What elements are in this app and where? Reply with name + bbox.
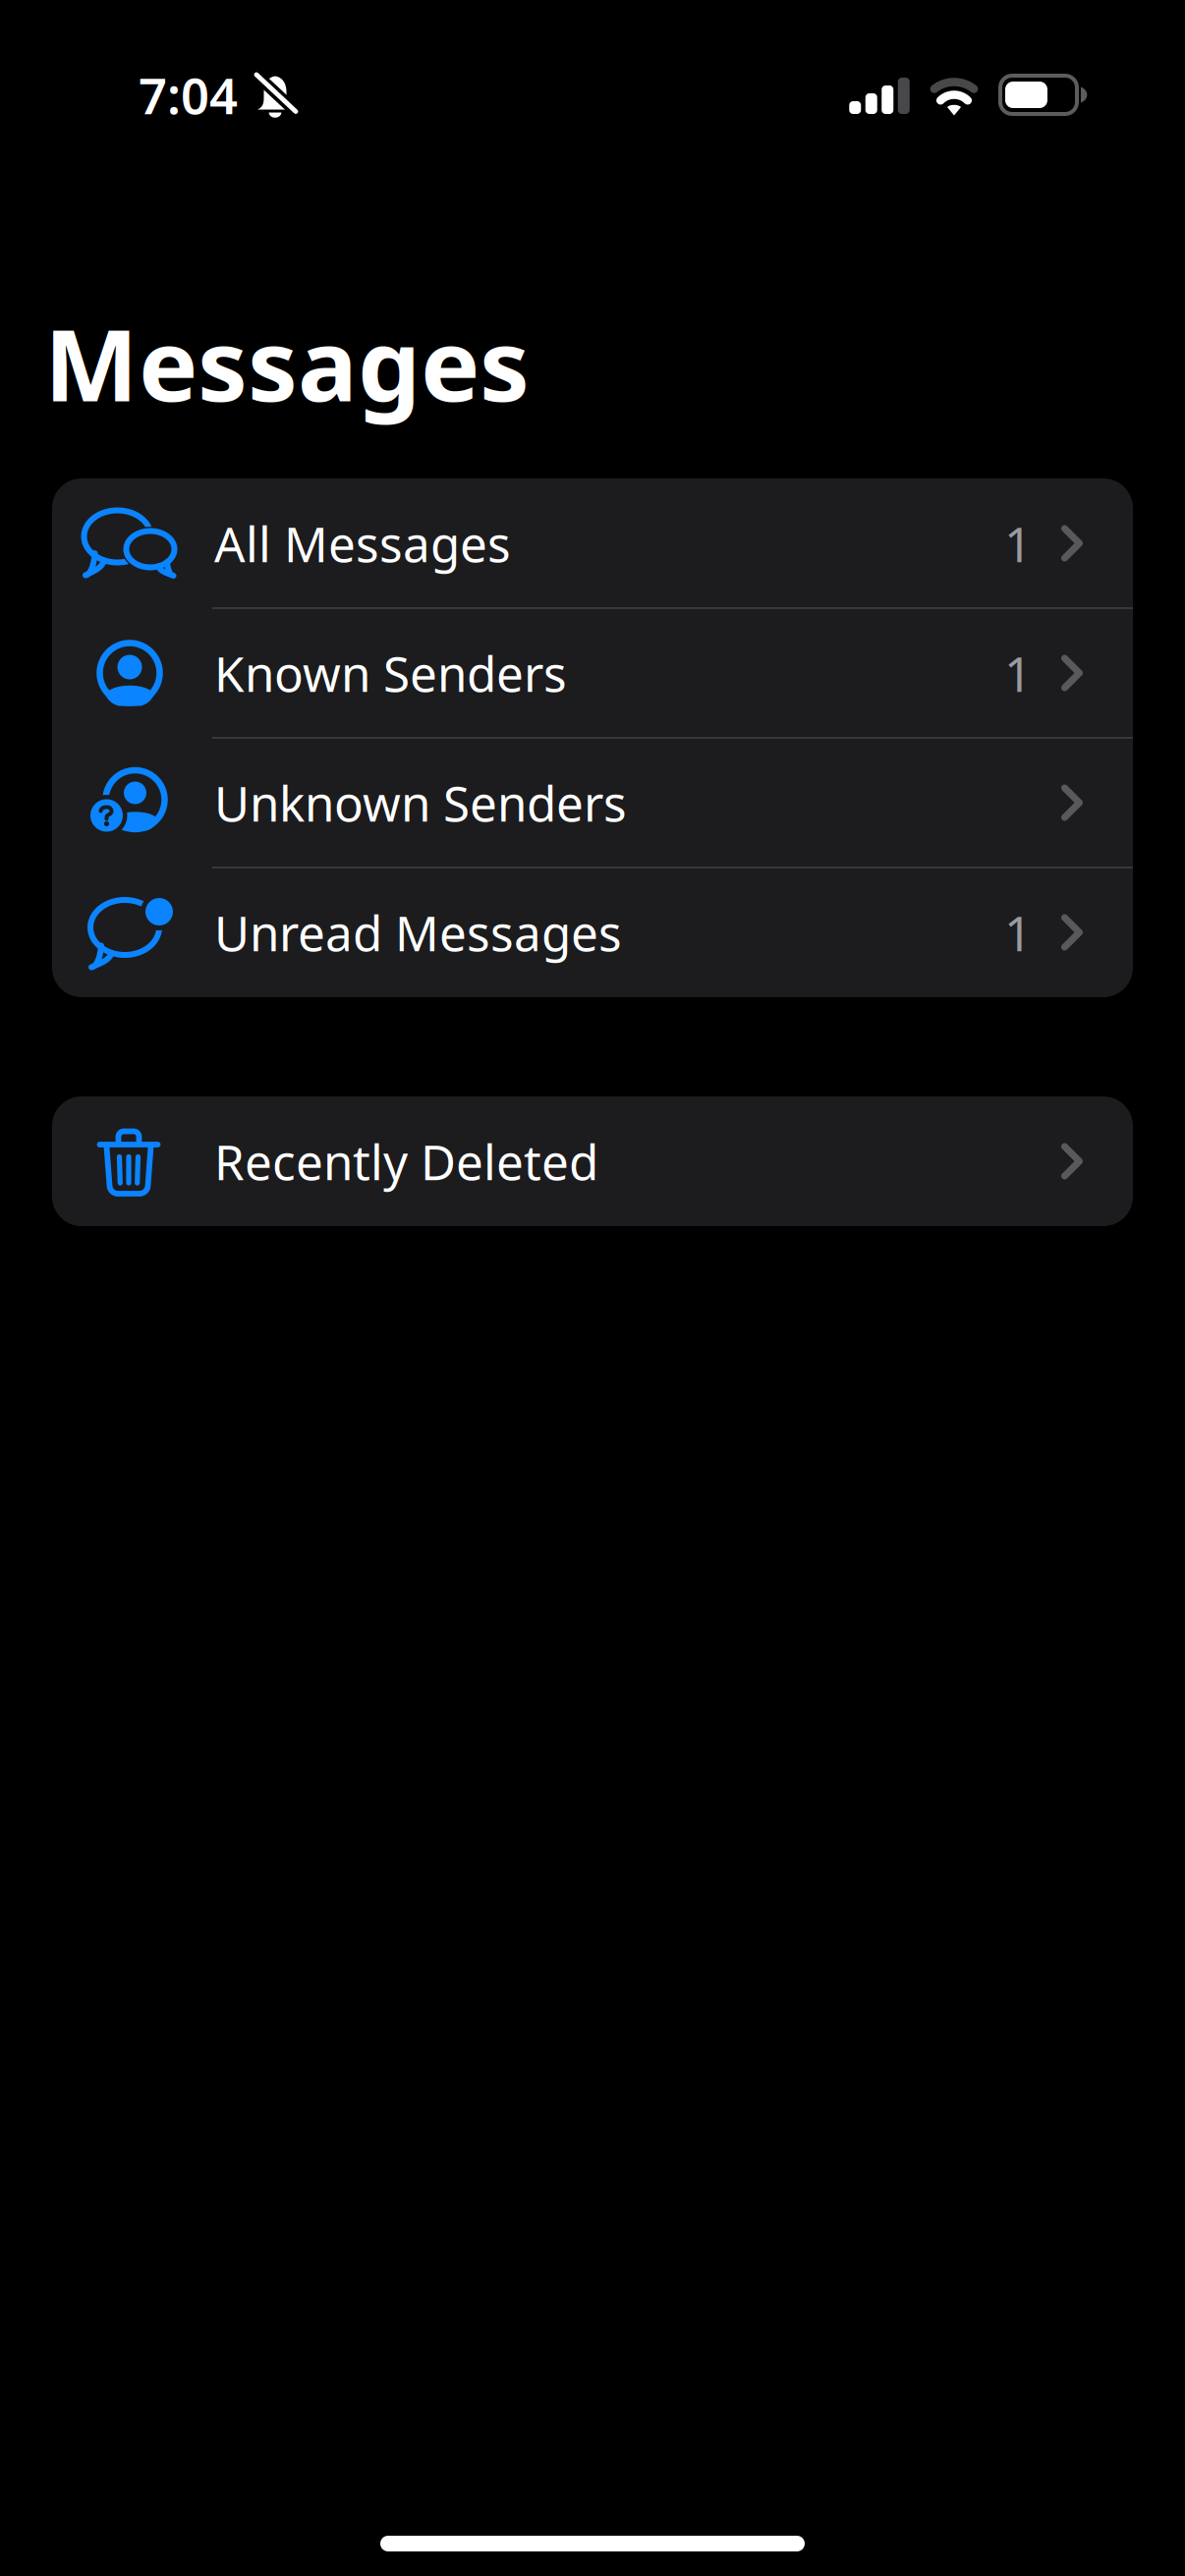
staticText: Unknown Senders — [214, 770, 627, 835]
button[interactable]: Recently Deleted — [52, 1096, 1133, 1226]
staticText: Unread Messages — [214, 900, 622, 964]
button[interactable]: Unread Messages — [52, 868, 1133, 997]
staticText: 1 — [1004, 900, 1032, 964]
staticText: All Messages — [214, 511, 511, 575]
button[interactable]: Unknown Senders — [52, 738, 1133, 868]
staticText: Known Senders — [214, 641, 567, 705]
staticText: 7:04 — [139, 62, 238, 128]
staticText: 1 — [1004, 511, 1032, 575]
staticText: Recently Deleted — [214, 1129, 598, 1193]
staticText: Messages — [44, 297, 530, 429]
staticText: 1 — [1004, 641, 1032, 705]
button[interactable]: All Messages — [52, 478, 1133, 608]
button[interactable]: Known Senders — [52, 608, 1133, 738]
